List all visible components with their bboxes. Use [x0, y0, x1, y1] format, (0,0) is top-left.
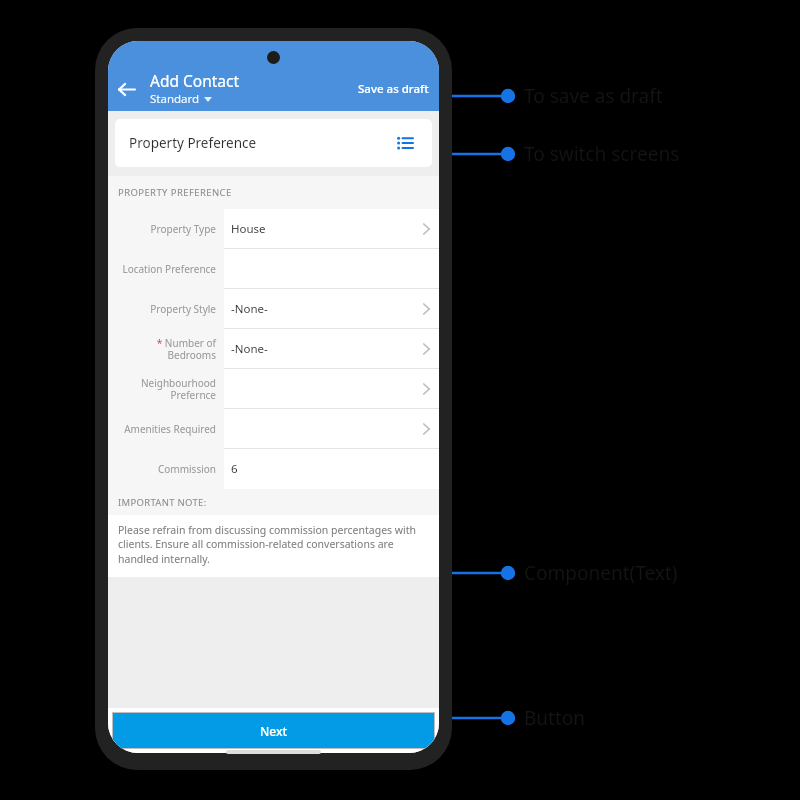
button[interactable]: Next — [112, 712, 435, 749]
staticText: Save as draft — [358, 81, 429, 97]
staticText: Add Contact — [150, 70, 240, 91]
staticText: To switch screens — [524, 141, 680, 167]
staticText: PROPERTY PREFERENCE — [118, 186, 232, 199]
button[interactable]: Location Preference — [108, 249, 439, 289]
staticText: Location Preference — [122, 262, 216, 276]
staticText: -None- — [231, 341, 268, 357]
staticText: Property Preference — [129, 134, 257, 152]
staticText: Neighbourhood Prefernce — [140, 376, 216, 402]
button[interactable]: Switch screens — [392, 130, 418, 156]
staticText: -None- — [231, 301, 268, 317]
button[interactable]: Commission — [108, 449, 439, 489]
staticText: To save as draft — [524, 83, 663, 109]
staticText: IMPORTANT NOTE: — [118, 496, 207, 509]
button[interactable]: Back — [108, 71, 144, 107]
button[interactable]: Property Preference — [115, 119, 432, 167]
staticText: Property Style — [150, 302, 216, 316]
staticText: Commission — [157, 462, 216, 476]
staticText: Button — [524, 705, 586, 731]
button[interactable]: Standard — [150, 91, 212, 107]
staticText: House — [231, 221, 266, 237]
staticText: Amenities Required — [124, 422, 216, 436]
button[interactable]: Property Type — [108, 209, 439, 249]
staticText: Please refrain from discussing commissio… — [118, 523, 431, 566]
staticText: Property Type — [150, 222, 216, 236]
staticText: Next — [260, 723, 288, 739]
button[interactable]: Neighbourhood Prefernce — [108, 369, 439, 409]
staticText: * Number of Bedrooms — [156, 336, 216, 362]
button[interactable]: Amenities Required — [108, 409, 439, 449]
button[interactable]: Property Style — [108, 289, 439, 329]
button[interactable]: * Number of Bedrooms — [108, 329, 439, 369]
button[interactable]: Save as draft — [348, 75, 439, 103]
staticText: Standard — [150, 91, 200, 107]
staticText: Component(Text) — [524, 560, 678, 586]
staticText: 6 — [231, 461, 238, 477]
